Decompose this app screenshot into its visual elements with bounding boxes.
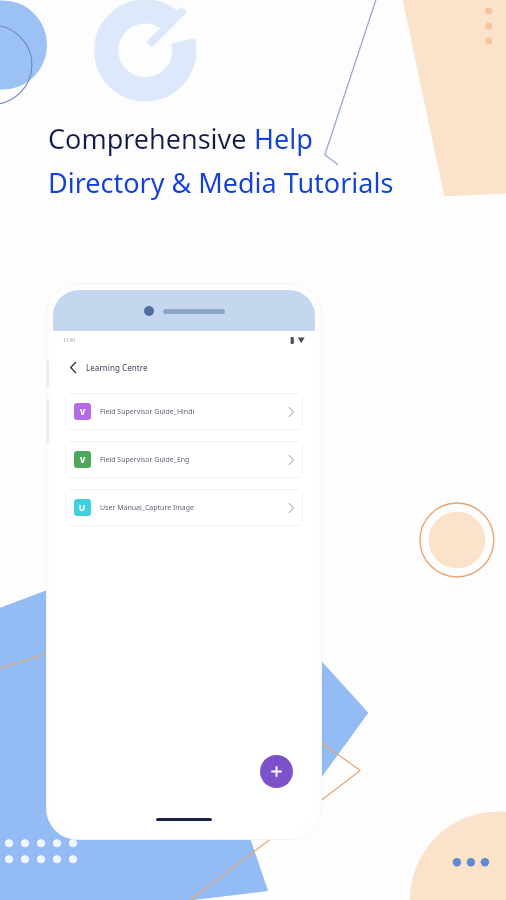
staticText: Learning Centre <box>86 362 148 373</box>
staticText: Comprehensive <box>48 120 254 157</box>
button[interactable]: U <box>65 489 303 526</box>
staticText: V <box>80 406 86 417</box>
staticText: 11:41 <box>63 337 76 344</box>
staticText: User Manual_Capture Image <box>100 503 195 513</box>
staticText: Help <box>254 120 313 157</box>
button[interactable]: Back <box>65 359 81 375</box>
staticText: Field Supervisor Guide_Eng <box>100 455 190 465</box>
staticText: Directory & Media Tutorials <box>48 164 394 201</box>
button[interactable]: V <box>65 441 303 478</box>
button[interactable]: V <box>65 393 303 430</box>
staticText: U <box>79 502 86 513</box>
staticText: V <box>80 454 86 465</box>
staticText: Field Supervisor Guide_Hindi <box>100 407 195 417</box>
button[interactable]: Add <box>260 755 293 788</box>
